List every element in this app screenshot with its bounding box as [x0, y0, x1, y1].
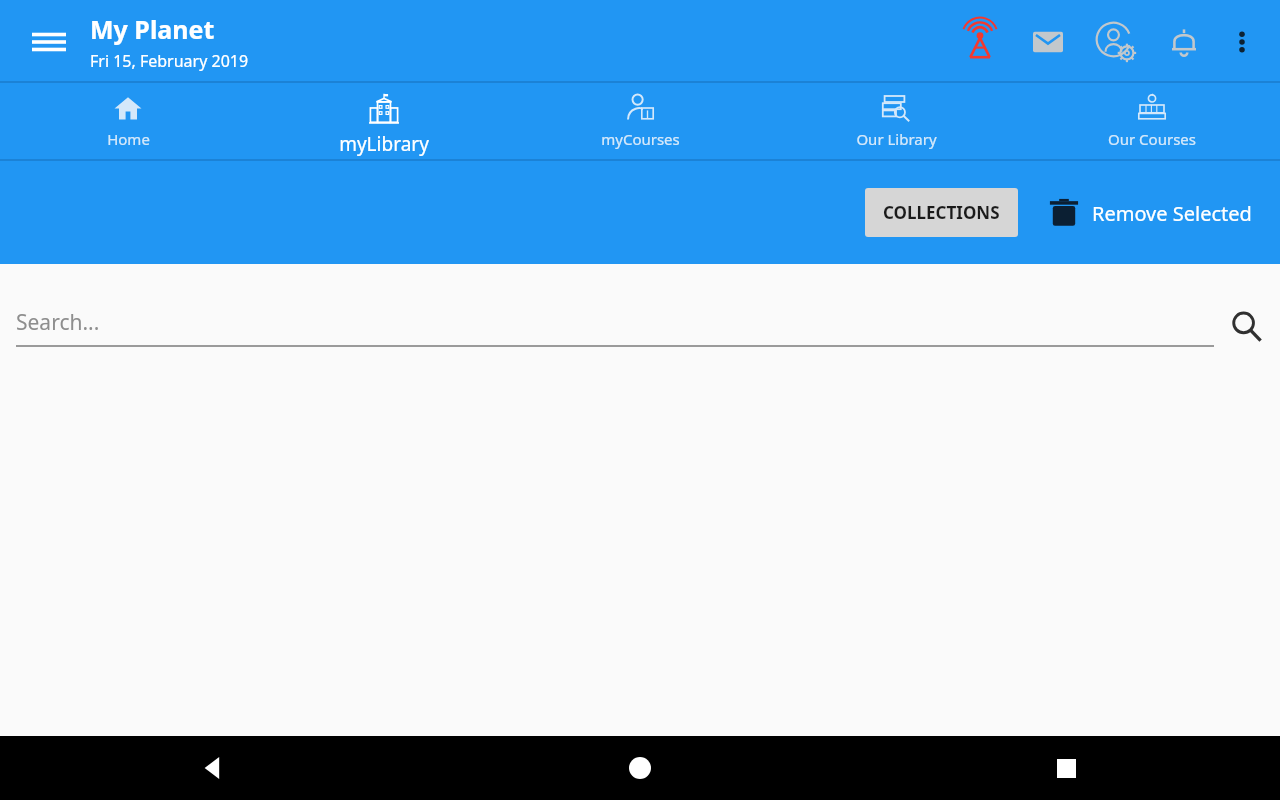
button[interactable]: Home — [0, 83, 256, 161]
staticText: Fri 15, February 2019 — [90, 50, 249, 72]
button[interactable]: Back — [0, 736, 426, 800]
staticText: Search... — [16, 308, 100, 337]
button[interactable]: Our Library — [768, 83, 1024, 161]
button[interactable]: myLibrary — [256, 83, 512, 161]
button[interactable]: Notifications — [1160, 18, 1208, 66]
staticText: Our Courses — [1108, 129, 1196, 149]
button[interactable]: Messages — [1024, 18, 1072, 66]
button[interactable]: Remove Selected — [1044, 193, 1256, 233]
button[interactable]: COLLECTIONS — [865, 188, 1018, 237]
button[interactable]: Broadcast — [954, 16, 1006, 68]
button[interactable]: Profile settings — [1090, 16, 1142, 68]
staticText: My Planet — [90, 12, 215, 46]
button[interactable]: Recent apps — [853, 736, 1280, 800]
button[interactable]: More options — [1218, 18, 1266, 66]
staticText: Our Library — [856, 129, 937, 149]
staticText: Remove Selected — [1092, 200, 1252, 227]
staticText: Home — [107, 129, 150, 149]
button[interactable]: Open navigation menu — [20, 13, 78, 71]
staticText: COLLECTIONS — [883, 201, 1000, 224]
button[interactable]: Home — [426, 736, 853, 800]
button[interactable]: Search — [1214, 294, 1280, 360]
button[interactable]: Our Courses — [1024, 83, 1280, 161]
button[interactable]: myCourses — [512, 83, 768, 161]
staticText: myCourses — [601, 129, 680, 149]
staticText: myLibrary — [339, 131, 429, 157]
